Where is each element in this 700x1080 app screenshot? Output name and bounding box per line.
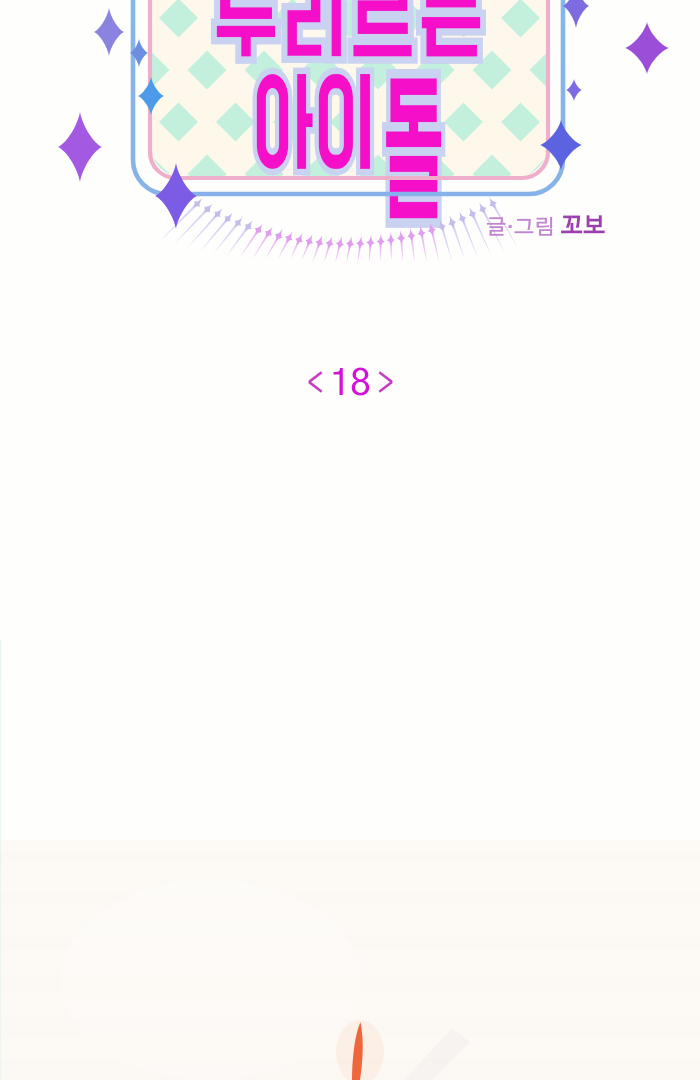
- button[interactable]: 글·그림: [486, 215, 606, 238]
- staticText: 아이: [252, 66, 376, 191]
- staticText: 글·그림: [486, 217, 555, 238]
- staticText: 아이: [252, 66, 376, 191]
- staticText: <: [307, 369, 324, 399]
- staticText: >: [377, 369, 394, 399]
- staticText: 돌: [383, 66, 444, 252]
- staticText: 두리르는: [213, 0, 487, 76]
- staticText: 두리르는: [213, 0, 487, 76]
- staticText: 18: [330, 366, 371, 402]
- button[interactable]: <: [293, 362, 408, 406]
- staticText: 돌: [383, 66, 444, 252]
- staticText: 꼬보: [555, 215, 606, 238]
